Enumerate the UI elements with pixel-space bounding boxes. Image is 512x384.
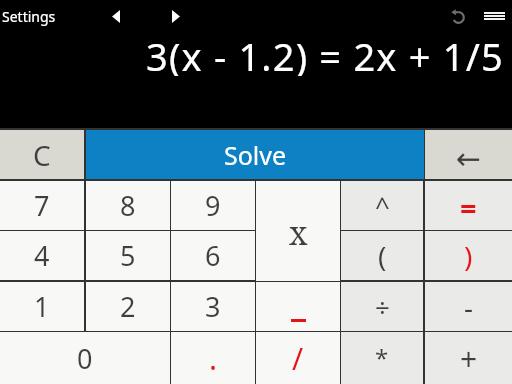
button[interactable]: ^ xyxy=(341,181,423,230)
button[interactable]: = xyxy=(425,181,512,230)
staticText: ← xyxy=(456,141,482,176)
button[interactable]: 3 xyxy=(171,282,255,331)
button[interactable]: 4 xyxy=(0,231,84,280)
staticText: 3 xyxy=(205,288,221,325)
staticText: + xyxy=(460,338,478,379)
staticText: ( xyxy=(378,237,387,275)
button[interactable]: 8 xyxy=(86,181,170,230)
button[interactable]: 5 xyxy=(86,231,170,280)
button[interactable] xyxy=(164,4,188,28)
button[interactable]: 1 xyxy=(0,282,84,331)
staticText: . xyxy=(209,338,218,379)
staticText: x xyxy=(289,211,308,255)
staticText: 3(x - 1.2) = 2x + 1/5 xyxy=(146,30,504,76)
staticText: 0 xyxy=(77,340,93,377)
button[interactable]: Settings xyxy=(0,4,60,28)
staticText: 7 xyxy=(34,187,50,224)
staticText: * xyxy=(375,341,389,374)
button[interactable]: * xyxy=(341,332,423,384)
button[interactable]: ) xyxy=(425,231,512,280)
staticText: - xyxy=(464,288,474,326)
button[interactable] xyxy=(446,4,470,28)
staticText: Settings xyxy=(2,7,56,26)
button[interactable]: 6 xyxy=(171,231,255,280)
staticText: 4 xyxy=(34,237,50,274)
staticText: 2 xyxy=(120,288,136,325)
staticText: 1 xyxy=(34,288,50,325)
staticText: ÷ xyxy=(375,289,390,324)
button[interactable]: 0 xyxy=(0,332,170,384)
button[interactable]: 7 xyxy=(0,181,84,230)
staticText: C xyxy=(33,136,51,174)
button[interactable]: + xyxy=(425,332,512,384)
staticText: = xyxy=(460,188,477,227)
staticText: 9 xyxy=(205,187,221,224)
button[interactable]: . xyxy=(171,332,255,384)
button[interactable]: ( xyxy=(341,231,423,280)
button[interactable]: / xyxy=(256,332,340,384)
button[interactable]: ÷ xyxy=(341,282,423,331)
button[interactable]: Solve xyxy=(86,130,424,179)
staticText: Solve xyxy=(224,138,287,172)
button[interactable] xyxy=(480,6,508,26)
staticText: / xyxy=(292,338,304,379)
button[interactable]: x xyxy=(256,181,340,281)
staticText: ^ xyxy=(375,188,390,223)
staticText: 5 xyxy=(120,237,136,274)
staticText: 8 xyxy=(120,187,136,224)
button[interactable]: C xyxy=(0,130,84,179)
staticText: ) xyxy=(464,237,473,275)
staticText: 6 xyxy=(205,237,221,274)
button[interactable]: 9 xyxy=(171,181,255,230)
button[interactable]: 2 xyxy=(86,282,170,331)
button[interactable]: ← xyxy=(425,130,512,179)
button[interactable]: - xyxy=(425,282,512,331)
button[interactable] xyxy=(104,4,128,28)
button[interactable] xyxy=(256,282,340,331)
